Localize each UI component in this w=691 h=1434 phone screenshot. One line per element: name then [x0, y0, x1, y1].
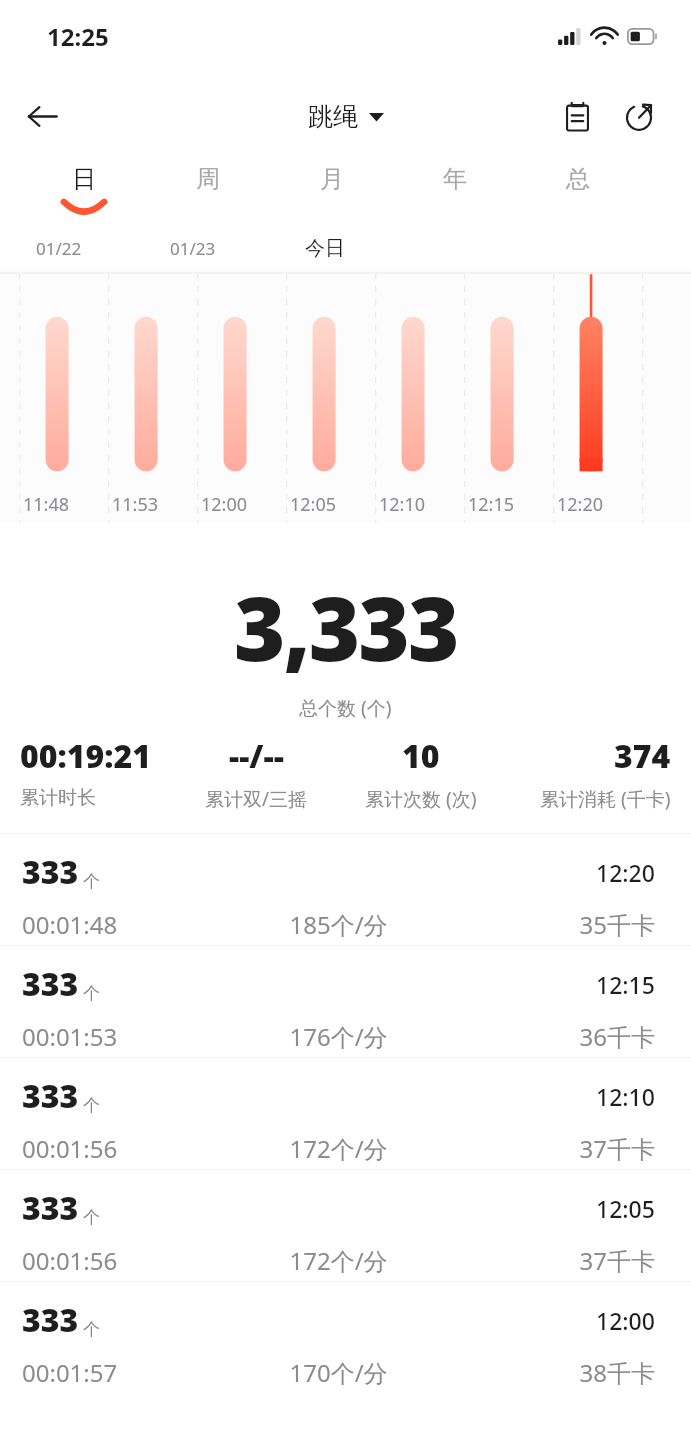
staticText: 35千卡 — [444, 908, 655, 941]
staticText: 总个数 (个) — [299, 695, 392, 721]
button[interactable]: 今日 — [305, 236, 345, 261]
staticText: 170个/分 — [233, 1356, 444, 1389]
button[interactable]: Back — [14, 88, 70, 144]
staticText: 12:15 — [596, 969, 655, 1000]
button[interactable]: Share — [613, 90, 665, 142]
button[interactable]: 年 — [393, 160, 516, 226]
staticText: 12:10 — [596, 1081, 655, 1112]
staticText: 12:20 — [596, 857, 655, 888]
staticText: 12:20 — [557, 492, 604, 517]
staticText: 172个/分 — [233, 1132, 444, 1165]
button[interactable]: 333 — [0, 946, 691, 1057]
button[interactable]: 周 — [146, 160, 270, 226]
staticText: 累计双/三摇 — [205, 786, 308, 812]
staticText: 个 — [83, 871, 100, 892]
staticText: 跳绳 — [308, 101, 358, 132]
staticText: 37千卡 — [444, 1132, 655, 1165]
staticText: 37千卡 — [444, 1244, 655, 1277]
button[interactable]: 总 — [516, 160, 639, 226]
staticText: 01/22 — [36, 237, 82, 260]
staticText: 333 — [22, 962, 79, 1006]
staticText: 00:01:48 — [22, 908, 233, 941]
staticText: 333 — [22, 850, 79, 894]
staticText: --/-- — [229, 734, 284, 778]
button[interactable]: Records — [551, 90, 603, 142]
staticText: 00:01:56 — [22, 1132, 233, 1165]
staticText: 12:00 — [596, 1305, 655, 1336]
staticText: 累计消耗 (千卡) — [540, 786, 671, 812]
button[interactable]: 跳绳 — [308, 101, 384, 132]
staticText: 总 — [566, 164, 590, 194]
staticText: 12:05 — [596, 1193, 655, 1224]
button[interactable]: 日 — [22, 160, 146, 226]
button[interactable]: 10 — [339, 734, 502, 812]
staticText: 个 — [83, 983, 100, 1004]
staticText: 12:00 — [201, 492, 248, 517]
button[interactable]: 00:19:21 — [20, 734, 173, 810]
button[interactable]: --/-- — [173, 734, 339, 812]
staticText: 36千卡 — [444, 1020, 655, 1053]
staticText: 日 — [72, 164, 96, 194]
staticText: 00:01:53 — [22, 1020, 233, 1053]
staticText: 12:25 — [47, 20, 109, 53]
staticText: 10 — [402, 734, 440, 778]
staticText: 38千卡 — [444, 1356, 655, 1389]
button[interactable]: 333 — [0, 1058, 691, 1169]
staticText: 333 — [22, 1186, 79, 1230]
button[interactable]: 333 — [0, 1282, 691, 1393]
staticText: 12:05 — [290, 492, 337, 517]
staticText: 个 — [83, 1095, 100, 1116]
staticText: 01/23 — [170, 237, 216, 260]
staticText: 11:48 — [23, 492, 70, 517]
staticText: 333 — [22, 1298, 79, 1342]
staticText: 月 — [320, 164, 344, 194]
staticText: 00:01:57 — [22, 1356, 233, 1389]
staticText: 374 — [614, 734, 671, 778]
button[interactable]: 333 — [0, 834, 691, 945]
button[interactable]: 333 — [0, 1170, 691, 1281]
staticText: 个 — [83, 1319, 100, 1340]
staticText: 3,333 — [234, 567, 458, 687]
staticText: 个 — [83, 1207, 100, 1228]
button[interactable]: 月 — [270, 160, 393, 226]
button[interactable]: 374 — [502, 734, 671, 812]
staticText: 累计次数 (次) — [365, 786, 477, 812]
staticText: 周 — [196, 164, 220, 194]
staticText: 172个/分 — [233, 1244, 444, 1277]
staticText: 累计时长 — [20, 786, 96, 810]
staticText: 00:01:56 — [22, 1244, 233, 1277]
staticText: 176个/分 — [233, 1020, 444, 1053]
staticText: 11:53 — [112, 492, 159, 517]
staticText: 00:19:21 — [20, 734, 152, 778]
staticText: 185个/分 — [233, 908, 444, 941]
staticText: 年 — [443, 164, 467, 194]
staticText: 12:15 — [468, 492, 515, 517]
staticText: 333 — [22, 1074, 79, 1118]
staticText: 12:10 — [379, 492, 426, 517]
